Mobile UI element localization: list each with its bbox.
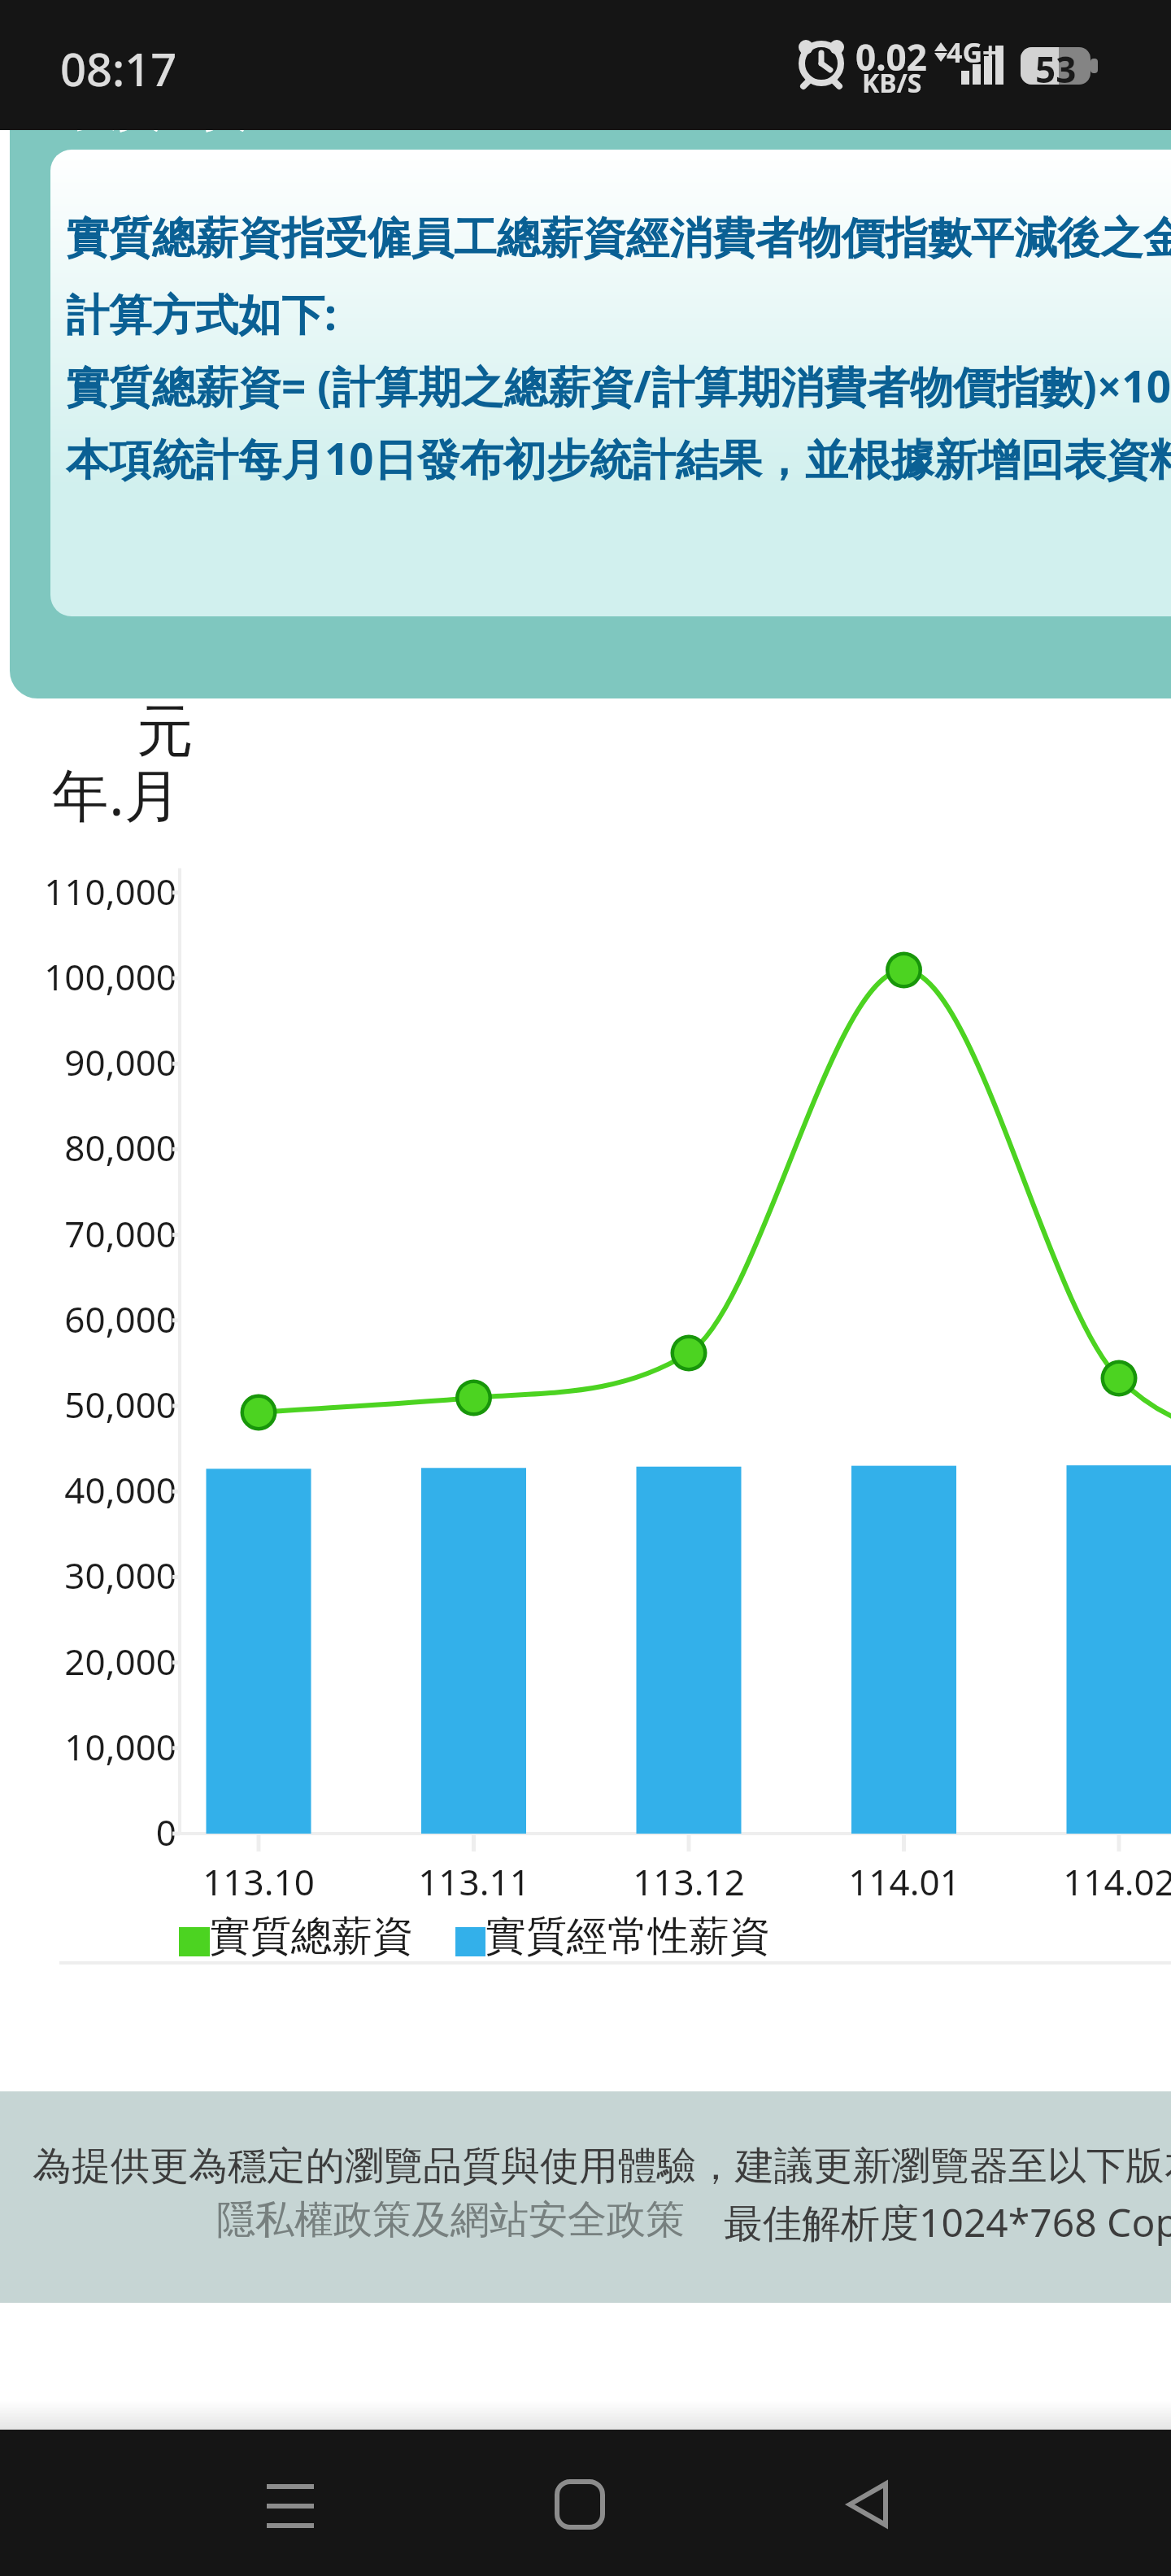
staticText: 113.12 [583, 1857, 794, 1906]
staticText: 實質經常性薪資 [485, 1911, 770, 1962]
staticText: 40,000 [14, 1465, 176, 1514]
staticText: 最佳解析度1024*768 Copyright [685, 2195, 1171, 2249]
staticText: KB/S [862, 65, 922, 101]
staticText: 70,000 [14, 1209, 176, 1258]
staticText: 90,000 [14, 1038, 176, 1086]
staticText: 計算方式如下: [66, 284, 337, 342]
button[interactable]: Home [531, 2456, 629, 2553]
button[interactable]: 實質總薪資 legend [179, 1927, 210, 1956]
staticText: 20,000 [14, 1637, 176, 1686]
staticText: 10,000 [14, 1722, 176, 1771]
staticText: 114.02 [1013, 1857, 1171, 1906]
staticText: 實質總薪資 [210, 1911, 413, 1962]
staticText: 80,000 [14, 1123, 176, 1172]
staticText: 110,000 [14, 867, 176, 916]
staticText: 0.02 [855, 33, 927, 81]
staticText: 元 [137, 696, 194, 768]
staticText: 50,000 [14, 1380, 176, 1429]
staticText: 53 [1035, 45, 1077, 94]
staticText: 114.01 [799, 1857, 1010, 1906]
staticText: 實質總薪資= (計算期之總薪資/計算期消費者物價指數)×100 [66, 356, 1171, 415]
staticText: 100,000 [14, 952, 176, 1001]
staticText: 0 [14, 1808, 176, 1856]
button[interactable]: Back [819, 2456, 916, 2553]
staticText: 60,000 [14, 1295, 176, 1343]
staticText: 為提供更為穩定的瀏覽品質與使用體驗，建議更新瀏覽器至以下版本： [33, 2142, 1171, 2191]
button[interactable]: 隱私權政策及網站安全政策 [216, 2195, 685, 2244]
staticText: 實質薪資統計說明 [75, 83, 420, 137]
staticText: 30,000 [14, 1551, 176, 1599]
staticText: 本項統計每月10日發布初步統計結果，並根據新增回表資料 [66, 429, 1171, 487]
staticText: 年.月 [52, 755, 181, 833]
staticText: 113.10 [153, 1857, 364, 1906]
staticText: 4G+ [947, 33, 999, 71]
staticText: 113.11 [368, 1857, 580, 1906]
staticText: 實質總薪資指受僱員工總薪資經消費者物價指數平減後之金額， [66, 211, 1171, 266]
button[interactable]: Recent apps [242, 2456, 339, 2553]
staticText: 08:17 [60, 37, 177, 99]
button[interactable]: 實質經常性薪資 legend [455, 1927, 485, 1956]
